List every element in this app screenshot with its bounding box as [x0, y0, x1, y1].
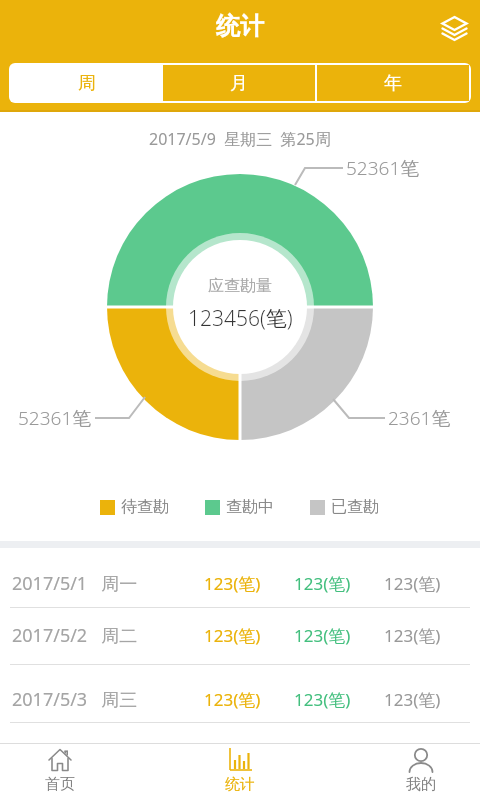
staticText: 已查勘 [331, 497, 379, 517]
staticText: 52361笔 [18, 405, 92, 431]
staticText: 123(笔) [204, 624, 261, 647]
staticText: 123(笔) [294, 572, 351, 595]
staticText: 2017/5/1 周一 [12, 571, 138, 596]
button[interactable] [435, 10, 475, 48]
button[interactable]: 统计 [200, 745, 280, 800]
button[interactable]: 我的 [381, 745, 461, 800]
staticText: 统计 [216, 11, 264, 41]
button[interactable]: 首页 [20, 745, 100, 800]
button[interactable]: 月 [163, 65, 315, 101]
staticText: 2017/5/2 周二 [12, 623, 138, 648]
staticText: 123(笔) [294, 688, 351, 711]
staticText: 52361笔 [346, 155, 420, 181]
staticText: 查勘中 [226, 497, 274, 517]
staticText: 我的 [406, 775, 436, 794]
staticText: 周 [78, 72, 96, 95]
staticText: 123456(笔) [188, 304, 293, 333]
staticText: 待查勘 [121, 497, 169, 517]
staticText: 2017/5/3 周三 [12, 687, 138, 712]
staticText: 2017/5/9 星期三 第25周 [149, 128, 331, 150]
staticText: 123(笔) [384, 572, 441, 595]
staticText: 应查勘量 [208, 276, 272, 296]
staticText: 123(笔) [294, 624, 351, 647]
staticText: 123(笔) [384, 624, 441, 647]
staticText: 2361笔 [388, 405, 451, 431]
staticText: 123(笔) [204, 688, 261, 711]
staticText: 年 [384, 72, 402, 95]
staticText: 123(笔) [204, 572, 261, 595]
staticText: 月 [230, 72, 248, 95]
button[interactable]: 2017/5/3 周三 [0, 672, 480, 726]
staticText: 统计 [225, 775, 255, 794]
button[interactable]: 2017/5/1 周一 [0, 556, 480, 610]
staticText: 123(笔) [384, 688, 441, 711]
button[interactable]: 周 [11, 65, 163, 101]
staticText: 首页 [45, 775, 75, 794]
button[interactable]: 2017/5/2 周二 [0, 608, 480, 662]
button[interactable]: 年 [317, 65, 469, 101]
